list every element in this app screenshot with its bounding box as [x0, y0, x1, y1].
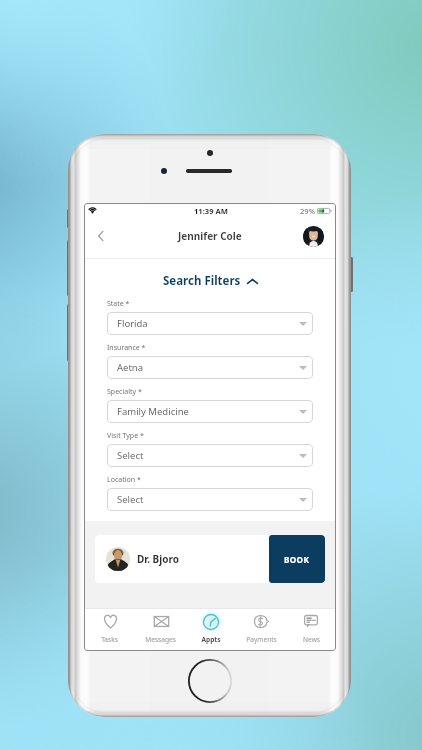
staticText: Payments	[246, 635, 277, 644]
staticText: News	[303, 635, 320, 644]
staticText: BOOK	[284, 554, 310, 565]
staticText: Tasks	[101, 635, 118, 644]
staticText: Florida	[117, 317, 148, 330]
staticText: Specialty *	[107, 387, 142, 397]
staticText: Jennifer Cole	[178, 229, 242, 243]
staticText: State *	[107, 299, 130, 309]
button[interactable]: Search Filters	[163, 273, 258, 289]
staticText: Messages	[145, 635, 176, 644]
button[interactable]: Florida	[107, 312, 313, 335]
staticText: Select	[117, 493, 144, 506]
button[interactable]: Messages	[135, 609, 186, 644]
button[interactable]: Select	[107, 444, 313, 467]
button[interactable]: Profile	[303, 226, 324, 247]
button[interactable]: Appts	[186, 609, 236, 644]
staticText: Select	[117, 449, 144, 462]
button[interactable]: BOOK	[269, 535, 325, 583]
staticText: 29%	[300, 206, 315, 216]
staticText: Aetna	[117, 361, 144, 374]
staticText: Dr. Bjoro	[137, 552, 179, 566]
button[interactable]: Tasks	[84, 609, 135, 644]
staticText: 11:39 AM	[194, 206, 228, 216]
staticText: Visit Type *	[107, 431, 144, 441]
button[interactable]: Payments	[236, 609, 286, 644]
staticText: Search Filters	[163, 273, 241, 289]
button[interactable]: Select	[107, 488, 313, 511]
staticText: Appts	[201, 635, 221, 644]
button[interactable]: Family Medicine	[107, 400, 313, 423]
button[interactable]: Back	[90, 225, 112, 247]
staticText: Insurance *	[107, 343, 146, 353]
button[interactable]: Aetna	[107, 356, 313, 379]
staticText: Location *	[107, 475, 141, 485]
button[interactable]: News	[286, 609, 336, 644]
staticText: Family Medicine	[117, 405, 189, 418]
